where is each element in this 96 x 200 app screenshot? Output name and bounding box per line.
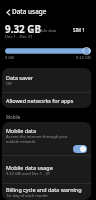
button[interactable]: Mobile data usage (2, 156, 91, 183)
staticText: Allowed networks for apps (6, 97, 74, 104)
staticText: 9.32 GB used Dec 1 - 31 (6, 171, 51, 176)
staticText: Mobile data usage (6, 164, 53, 171)
staticText: Data usage (12, 7, 47, 16)
staticText: Access the internet through your mobile … (6, 134, 68, 144)
button[interactable]: Data saver (2, 68, 91, 92)
button[interactable]: Allowed networks for apps (2, 93, 91, 108)
button[interactable]: Navigate up (2, 6, 14, 18)
staticText: Mobile (6, 114, 21, 120)
staticText: 1st day of each month (6, 193, 48, 198)
button[interactable]: Mobile data (2, 122, 91, 155)
staticText: 9.32 GB (5, 22, 42, 35)
staticText: 0 GB (5, 55, 14, 60)
staticText: Dec 1 - Dec 31 (5, 34, 33, 40)
staticText: Off (6, 81, 12, 86)
staticText: Billing cycle and data warning (6, 186, 82, 193)
staticText: Data saver (6, 74, 33, 81)
staticText: Mobile data (6, 127, 36, 134)
staticText: of mobile data (31, 28, 57, 33)
staticText: 9.32 GB (76, 55, 91, 60)
staticText: SIM 1 (73, 27, 85, 33)
button[interactable]: Billing cycle and data warning (2, 184, 91, 200)
